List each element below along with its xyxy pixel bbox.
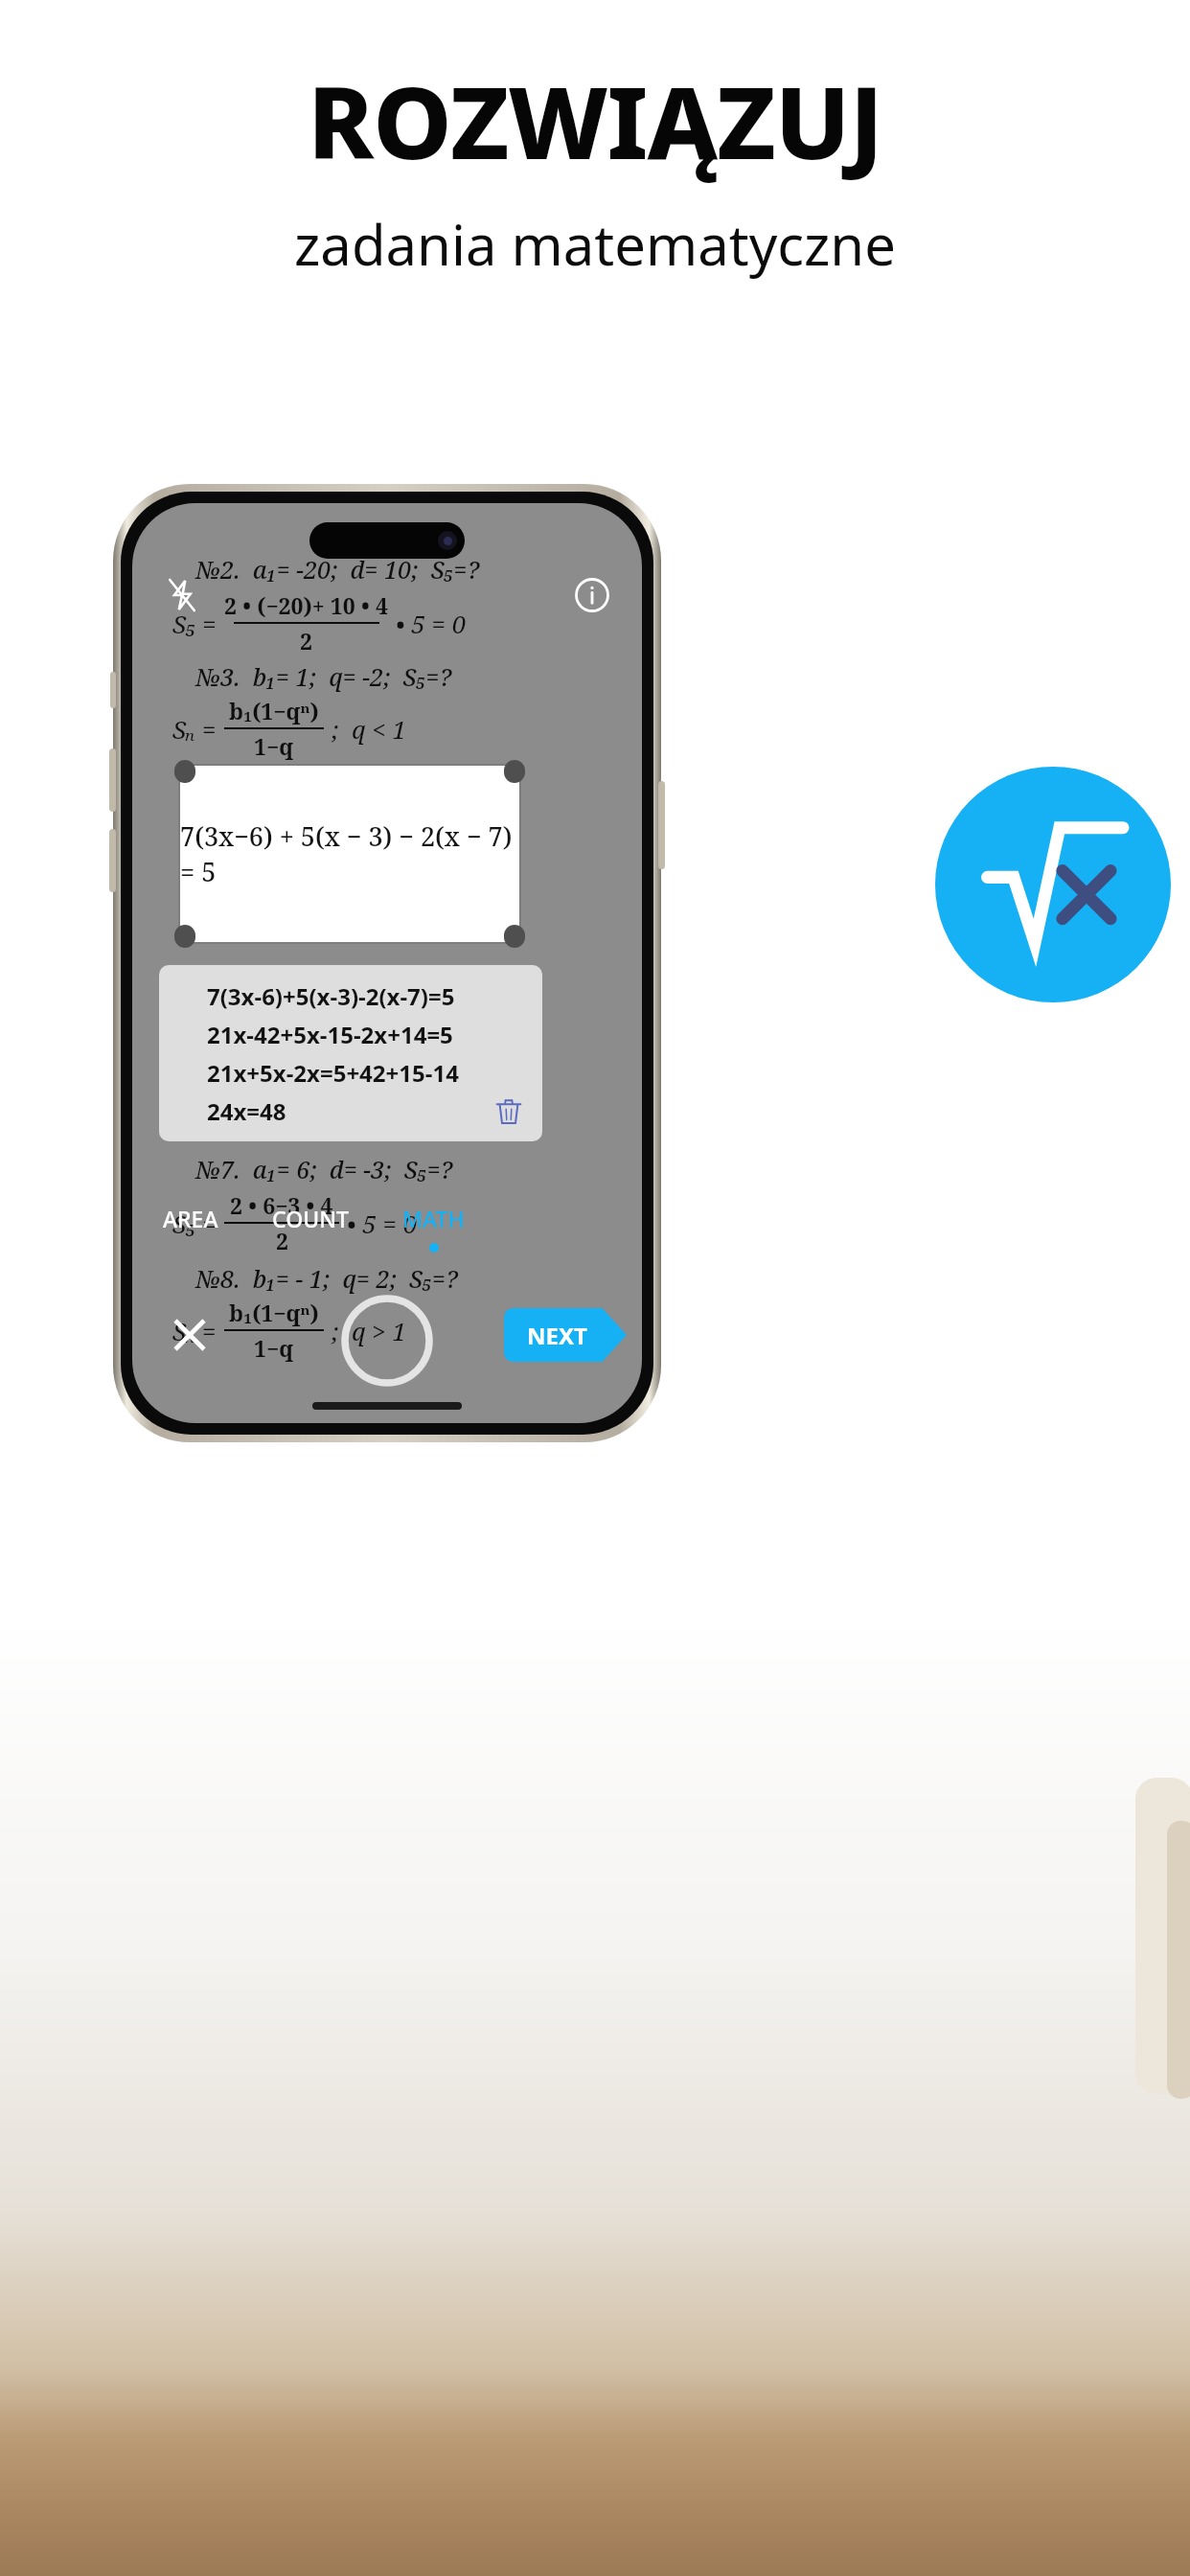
staticText: 21x-42+5x-15-2x+14=5 xyxy=(207,1019,453,1050)
staticText: №3. b₁= 1; q= -2; S₅=? xyxy=(195,660,452,693)
button[interactable]: 7(3x-6)+5(x-3)-2(x-7)=5 xyxy=(159,965,542,1141)
button[interactable]: MATH xyxy=(397,1201,470,1255)
button[interactable]: COUNT xyxy=(266,1201,355,1246)
staticText: 1−q xyxy=(254,1333,294,1363)
staticText: b₁(1−qⁿ) xyxy=(229,696,319,725)
staticText: 7(3x-6)+5(x-3)-2(x-7)=5 xyxy=(207,980,455,1012)
button[interactable]: Flash off xyxy=(157,570,207,620)
staticText: 2 • (−20)+ 10 • 4 xyxy=(224,590,388,620)
staticText: ROZWIĄZUJ xyxy=(308,53,882,189)
staticText: №7. a₁= 6; d= -3; S₅=? xyxy=(195,1153,453,1185)
staticText: • 5 = 0 xyxy=(396,607,467,640)
button[interactable]: Delete xyxy=(491,1093,527,1130)
staticText: zadania matematyczne xyxy=(294,206,896,282)
staticText: ; q > 1 xyxy=(332,1314,407,1347)
staticText: b₁(1−qⁿ) xyxy=(229,1298,319,1327)
button[interactable]: Info xyxy=(567,570,617,620)
button[interactable]: NEXT xyxy=(504,1308,627,1362)
staticText: 2 • 6−3 • 4 xyxy=(230,1190,333,1220)
staticText: MATH xyxy=(402,1204,465,1233)
staticText: 1−q xyxy=(254,731,294,761)
staticText: 7(3x−6) + 5(x − 3) − 2(x − 7) = 5 xyxy=(180,818,519,889)
button[interactable]: Capture xyxy=(341,1295,433,1387)
staticText: 2 xyxy=(300,626,312,655)
staticText: S₅ = xyxy=(172,607,217,640)
staticText: NEXT xyxy=(527,1320,587,1351)
staticText: №2. a₁= -20; d= 10; S₅=? xyxy=(195,553,480,586)
button[interactable]: Close xyxy=(163,1308,217,1362)
staticText: Sₙ = xyxy=(172,712,217,746)
staticText: ; q < 1 xyxy=(332,712,407,746)
staticText: Sₙ = xyxy=(172,1314,217,1347)
staticText: COUNT xyxy=(272,1204,349,1233)
staticText: 21x+5x-2x=5+42+15-14 xyxy=(207,1057,459,1089)
button[interactable]: Math solver xyxy=(935,767,1171,1002)
staticText: S₅ = xyxy=(172,1207,217,1240)
staticText: • 5 = 0 xyxy=(347,1207,418,1240)
staticText: 2 xyxy=(276,1226,288,1255)
staticText: AREA xyxy=(163,1204,218,1233)
staticText: 24x=48 xyxy=(207,1095,286,1127)
staticText: №8. b₁= - 1; q= 2; S₅=? xyxy=(195,1262,458,1295)
button[interactable]: AREA xyxy=(157,1201,224,1246)
